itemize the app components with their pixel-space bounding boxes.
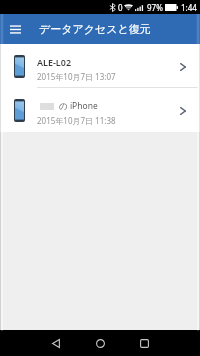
staticText: 97%: [147, 2, 163, 13]
button[interactable]: ALE-L02: [0, 44, 200, 88]
staticText: 2015年10月7日 11:38: [37, 115, 116, 126]
button[interactable]: Back: [34, 330, 78, 356]
button[interactable]: Recents: [122, 330, 166, 356]
staticText: 2015年10月7日 13:07: [37, 71, 116, 82]
button[interactable]: の iPhone: [0, 88, 200, 132]
button[interactable]: Menu: [0, 14, 30, 44]
button[interactable]: Home: [78, 330, 122, 356]
staticText: データアクセスと復元: [39, 22, 151, 36]
staticText: の iPhone: [59, 100, 98, 112]
staticText: 0: [118, 2, 123, 13]
staticText: ALE-L02: [37, 56, 72, 68]
staticText: 1:44: [181, 2, 197, 13]
